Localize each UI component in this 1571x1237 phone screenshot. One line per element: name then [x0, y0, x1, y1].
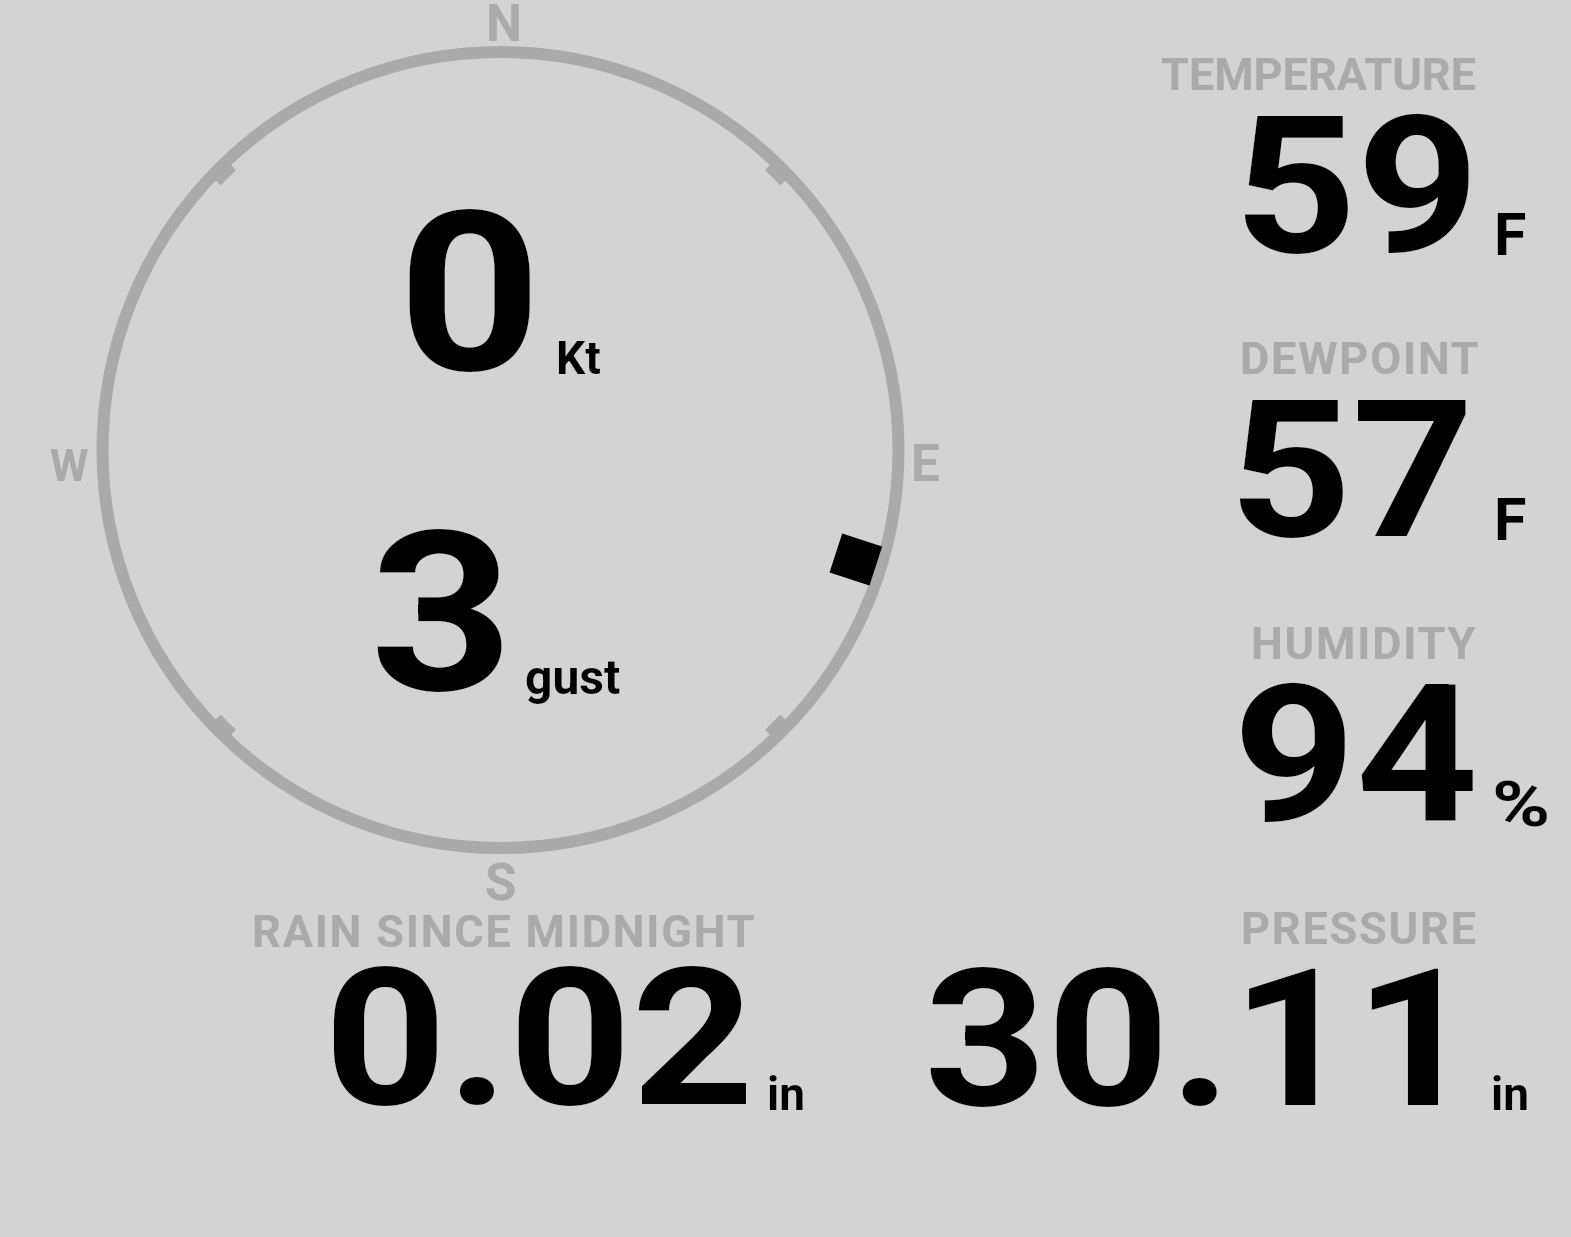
staticText: 94	[1233, 644, 1479, 868]
staticText: W	[50, 440, 89, 492]
staticText: 30.11	[924, 928, 1477, 1152]
button[interactable]: Humidity 94 percent	[1140, 610, 1571, 850]
staticText: Kt	[556, 331, 601, 385]
button[interactable]: Temperature 59 F	[1140, 40, 1571, 280]
staticText: 57	[1229, 359, 1475, 583]
button[interactable]: Wind speed and direction	[102, 52, 899, 849]
staticText: N	[486, 0, 522, 54]
staticText: HUMIDITY	[1251, 617, 1478, 670]
button[interactable]: Pressure 30.11 in	[900, 895, 1571, 1125]
staticText: RAIN SINCE MIDNIGHT	[252, 905, 757, 958]
staticText: DEWPOINT	[1240, 332, 1481, 385]
staticText: %	[1492, 768, 1551, 842]
staticText: 0	[398, 163, 541, 424]
staticText: PRESSURE	[1241, 902, 1478, 955]
staticText: gust	[525, 649, 621, 705]
staticText: F	[1494, 200, 1527, 269]
button[interactable]: Dewpoint 57 F	[1140, 325, 1571, 565]
staticText: F	[1494, 485, 1527, 554]
staticText: 0.02	[324, 927, 755, 1151]
button[interactable]: Rain since midnight 0.02 in	[230, 895, 830, 1125]
staticText: 3	[370, 483, 513, 744]
staticText: in	[767, 1067, 805, 1121]
staticText: S	[485, 853, 517, 913]
staticText: E	[911, 434, 940, 494]
staticText: TEMPERATURE	[1161, 48, 1476, 101]
staticText: 59	[1234, 75, 1480, 299]
staticText: in	[1491, 1067, 1529, 1121]
